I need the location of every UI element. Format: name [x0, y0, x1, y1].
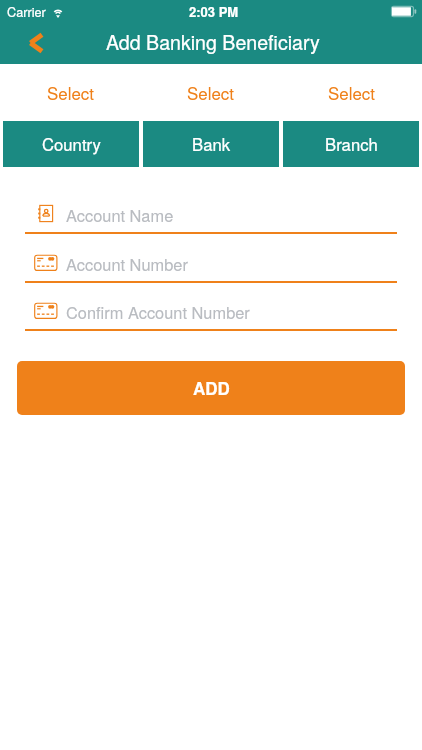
button[interactable]: Country [3, 121, 139, 167]
staticText: Branch [325, 132, 378, 156]
staticText: Bank [192, 132, 231, 156]
button[interactable]: Account Number [25, 234, 397, 283]
staticText: Add Banking Beneficiary [106, 27, 320, 55]
staticText: Select [187, 81, 234, 105]
staticText: Select [47, 81, 94, 105]
button[interactable]: ADD [17, 361, 405, 415]
staticText: ADD [193, 376, 230, 400]
staticText: Select [328, 81, 375, 105]
staticText: Account Number [66, 252, 188, 272]
staticText: Confirm Account Number [66, 300, 250, 320]
staticText: Carrier [7, 2, 46, 20]
button[interactable]: Branch [283, 121, 419, 167]
staticText: Country [42, 132, 101, 156]
button[interactable]: Bank [143, 121, 279, 167]
button[interactable]: Account Name [25, 185, 397, 234]
staticText: 2:03 PM [189, 2, 239, 21]
button[interactable]: Back [20, 25, 56, 61]
staticText: Account Name [66, 203, 174, 223]
button[interactable]: Confirm Account Number [25, 282, 397, 331]
